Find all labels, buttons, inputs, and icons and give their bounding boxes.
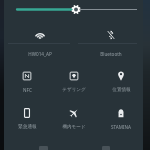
staticText: 緊急通報 <box>18 124 37 130</box>
staticText: Bluetooth <box>100 51 122 57</box>
staticText: NFC <box>23 87 32 93</box>
staticText: STAMINA <box>111 124 131 130</box>
button[interactable]: STAMINA <box>98 101 144 131</box>
button[interactable]: テザリング <box>51 64 97 94</box>
button[interactable]: NFC <box>4 64 50 94</box>
button[interactable]: HW014_AP <box>17 23 63 53</box>
button[interactable]: Bluetooth <box>88 23 134 53</box>
button[interactable]: 緊急通報 <box>4 101 50 131</box>
button[interactable]: 位置情報 <box>98 64 144 94</box>
staticText: HW014_AP <box>28 51 52 57</box>
staticText: 位置情報 <box>112 87 131 93</box>
staticText: テザリング <box>62 87 86 93</box>
staticText: 機内モード <box>62 124 86 130</box>
button[interactable]: 機内モード <box>51 101 97 131</box>
button[interactable]: Brightness <box>4 0 143 19</box>
